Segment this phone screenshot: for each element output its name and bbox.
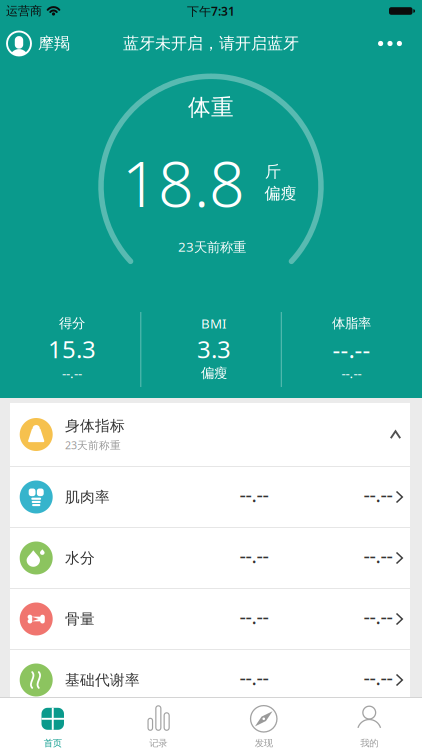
staticText: 记录 bbox=[149, 737, 167, 749]
staticText: --.-- bbox=[239, 603, 268, 630]
staticText: 肌肉率 bbox=[65, 488, 110, 506]
staticText: --.-- bbox=[239, 481, 268, 508]
staticText: 下午7:31 bbox=[187, 3, 235, 19]
staticText: 我的 bbox=[360, 737, 378, 749]
staticText: 体脂率 bbox=[332, 315, 371, 331]
button[interactable]: 更多 bbox=[378, 41, 422, 46]
staticText: 摩羯 bbox=[38, 34, 70, 53]
staticText: 偏瘦 bbox=[201, 365, 227, 381]
staticText: 骨量 bbox=[65, 610, 95, 628]
button[interactable]: 水分 bbox=[10, 528, 410, 588]
staticText: --.-- bbox=[342, 364, 362, 382]
staticText: --.-- bbox=[239, 664, 268, 691]
staticText: 23天前称重 bbox=[65, 438, 121, 452]
staticText: BMI bbox=[201, 314, 227, 332]
button[interactable]: 摩羯 个人信息 bbox=[0, 31, 70, 55]
button[interactable]: 蓝牙未开启，请开启蓝牙 bbox=[123, 34, 299, 53]
staticText: --.-- bbox=[333, 333, 371, 365]
staticText: 基础代谢率 bbox=[65, 671, 140, 689]
staticText: 18.8 bbox=[122, 141, 245, 224]
staticText: 23天前称重 bbox=[178, 238, 246, 255]
staticText: 斤 bbox=[265, 162, 281, 182]
button[interactable]: 身体指标 bbox=[10, 403, 410, 466]
staticText: 3.3 bbox=[197, 333, 231, 365]
staticText: --.-- bbox=[363, 664, 392, 691]
staticText: --.-- bbox=[363, 542, 392, 569]
button[interactable]: 记录 bbox=[105, 705, 211, 749]
staticText: 水分 bbox=[65, 549, 95, 567]
staticText: --.-- bbox=[239, 542, 268, 569]
staticText: 运营商 bbox=[6, 4, 42, 18]
button[interactable]: 骨量 bbox=[10, 589, 410, 649]
staticText: 15.3 bbox=[48, 333, 96, 365]
button[interactable]: 发现 bbox=[211, 705, 316, 749]
staticText: 身体指标 bbox=[65, 417, 125, 435]
staticText: 蓝牙未开启，请开启蓝牙 bbox=[123, 34, 299, 53]
button[interactable]: 基础代谢率 bbox=[10, 650, 410, 710]
button[interactable]: 肌肉率 bbox=[10, 467, 410, 527]
staticText: 首页 bbox=[44, 737, 62, 749]
button[interactable]: 我的 bbox=[316, 705, 422, 749]
staticText: --.-- bbox=[62, 364, 82, 382]
staticText: 偏瘦 bbox=[264, 184, 296, 203]
button[interactable]: 首页 bbox=[0, 705, 105, 749]
staticText: 发现 bbox=[255, 737, 273, 749]
staticText: 体重 bbox=[188, 94, 234, 121]
staticText: --.-- bbox=[363, 481, 392, 508]
staticText: --.-- bbox=[363, 603, 392, 630]
staticText: 得分 bbox=[59, 315, 85, 331]
